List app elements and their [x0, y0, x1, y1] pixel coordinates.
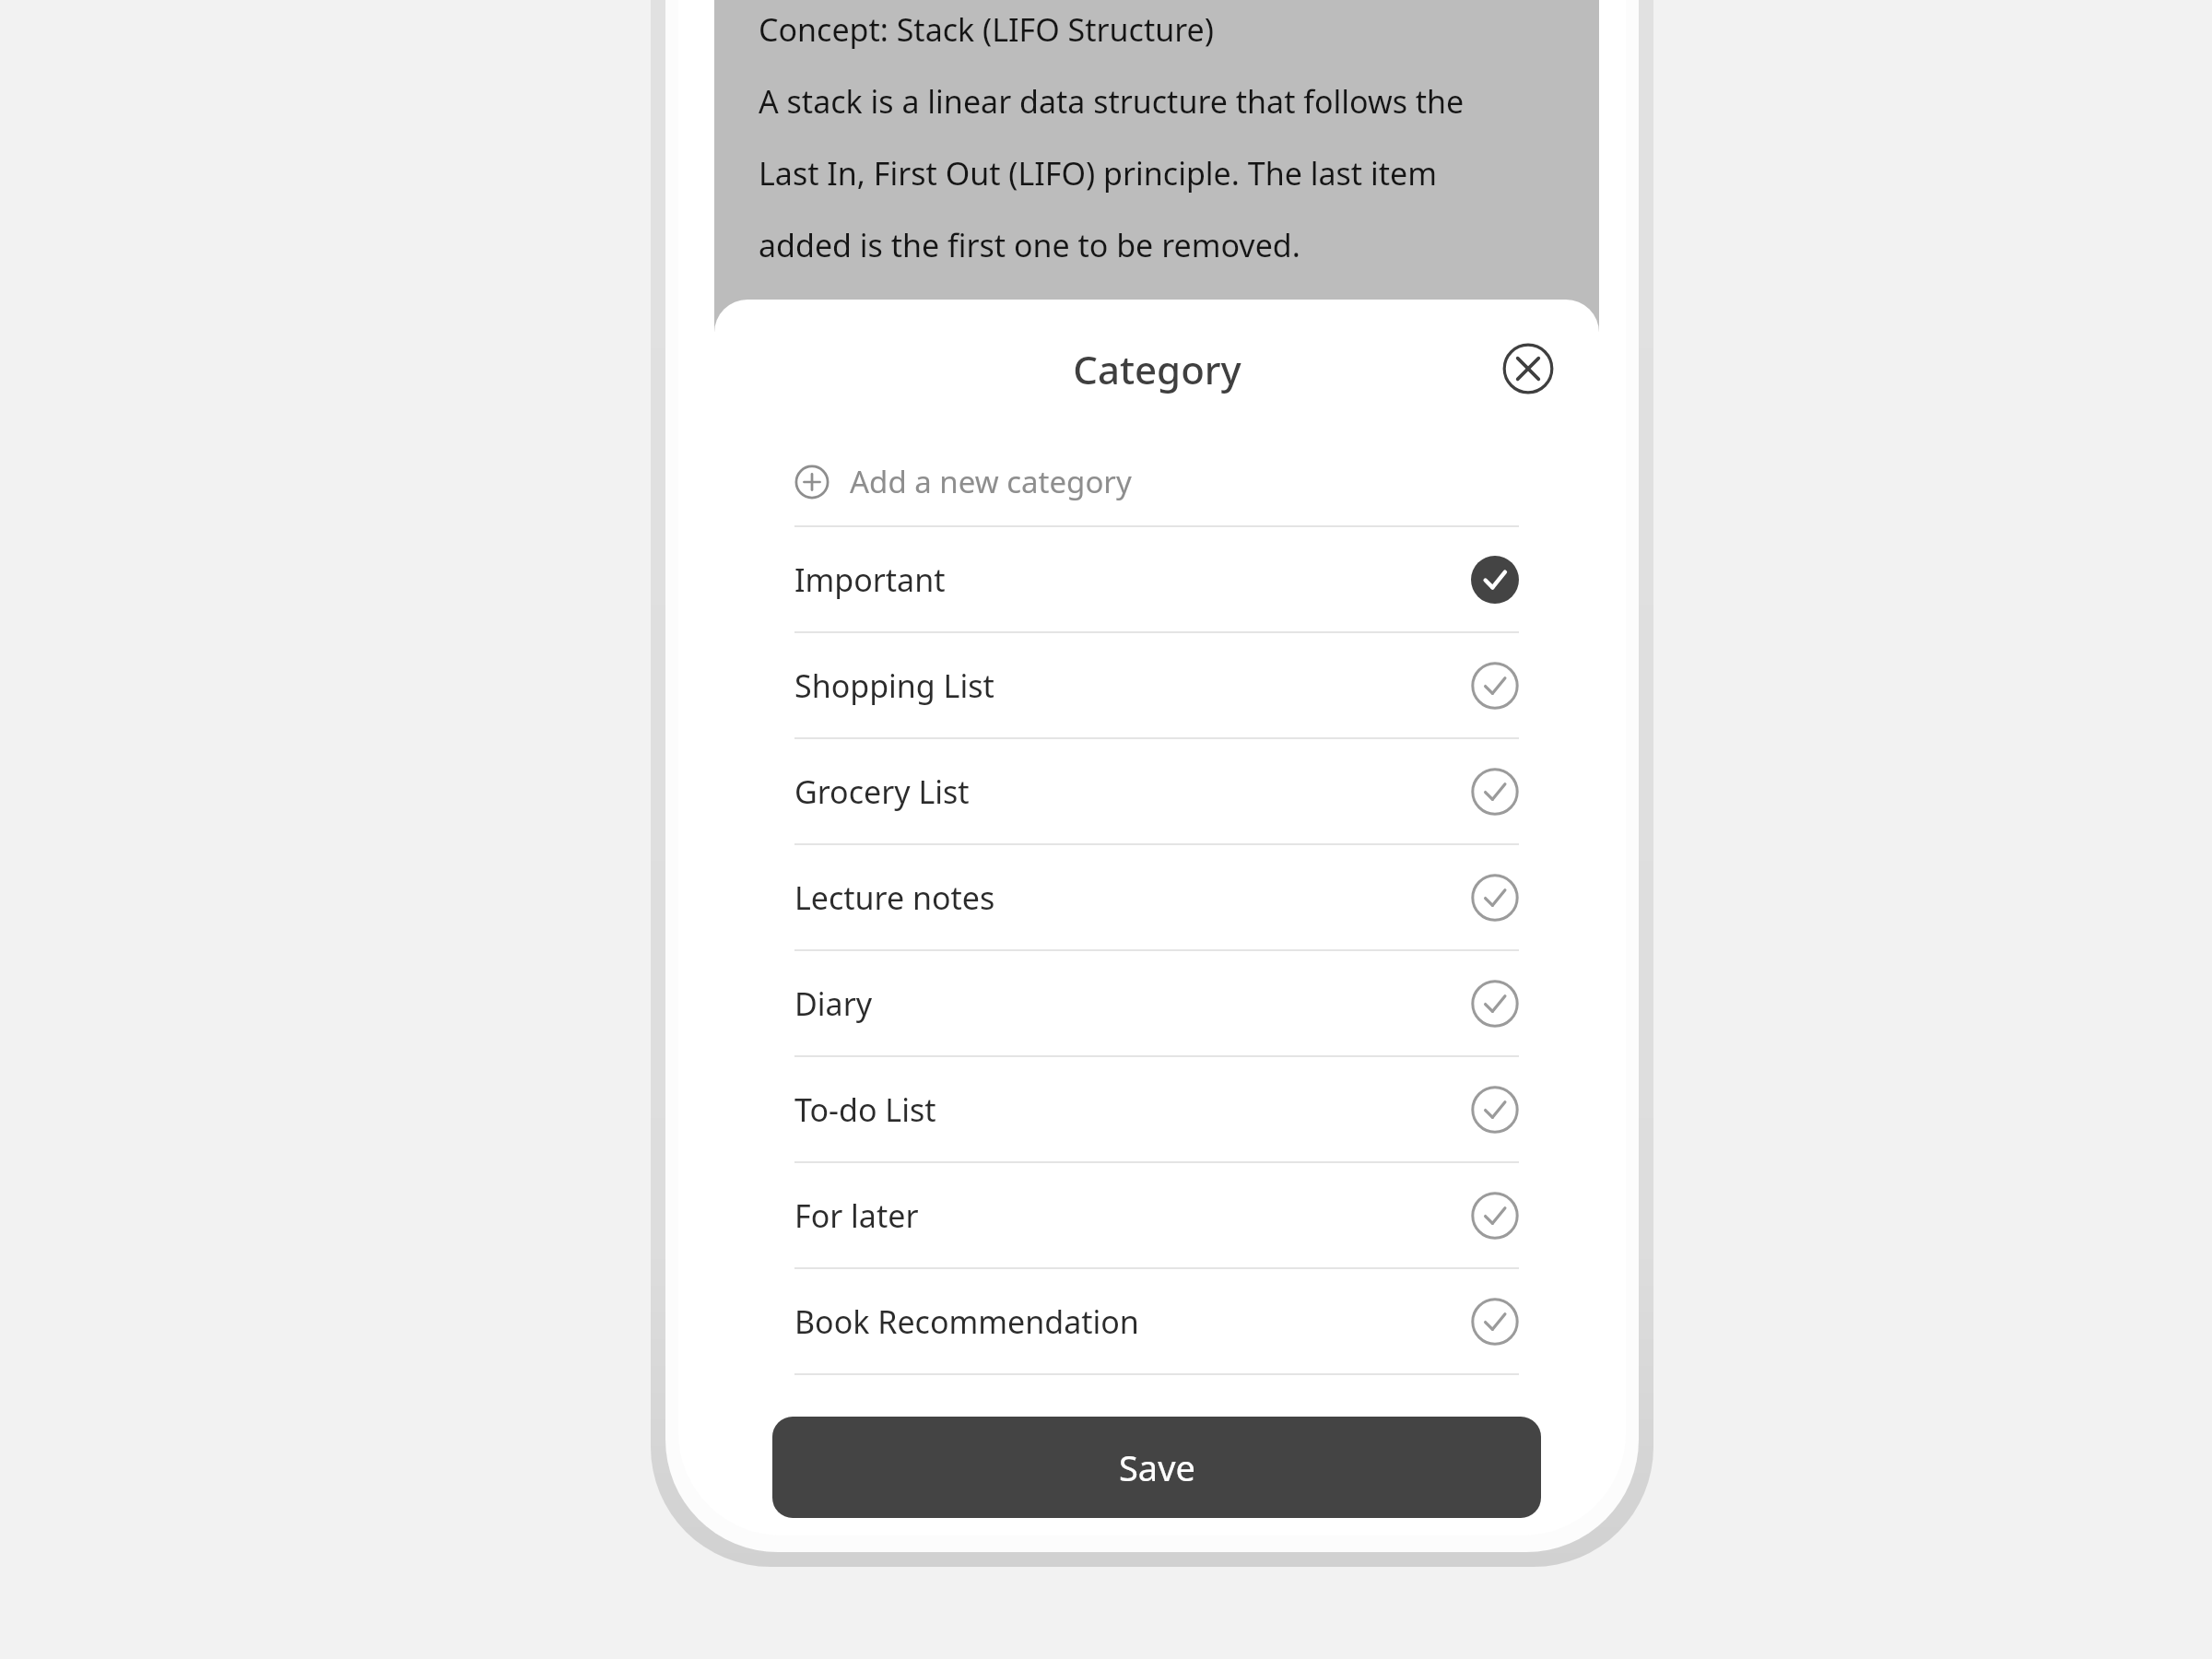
- button[interactable]: Important: [714, 527, 1599, 631]
- staticText: To-do List: [794, 1088, 1471, 1131]
- staticText: Add a new category: [850, 461, 1132, 502]
- staticText: Concept: Stack (LIFO Structure): [759, 8, 1214, 51]
- staticText: For later: [794, 1194, 1471, 1237]
- staticText: A stack is a linear data structure that …: [759, 80, 1465, 123]
- staticText: Grocery List: [794, 771, 1471, 813]
- staticText: Last In, First Out (LIFO) principle. The…: [759, 152, 1437, 194]
- button[interactable]: To-do List: [714, 1057, 1599, 1161]
- button[interactable]: Lecture notes: [714, 845, 1599, 949]
- button[interactable]: Shopping List: [714, 633, 1599, 737]
- staticText: Save: [1119, 1443, 1195, 1491]
- staticText: Diary: [794, 982, 1471, 1025]
- button[interactable]: Diary: [714, 951, 1599, 1055]
- button[interactable]: Save: [772, 1417, 1541, 1518]
- staticText: Important: [794, 559, 1471, 601]
- button[interactable]: Book Recommendation: [714, 1269, 1599, 1373]
- button[interactable]: Grocery List: [714, 739, 1599, 843]
- staticText: Category: [1073, 343, 1241, 395]
- button[interactable]: Close: [1501, 342, 1555, 395]
- button[interactable]: For later: [714, 1163, 1599, 1267]
- button[interactable]: Add a new category: [714, 438, 1599, 525]
- staticText: Lecture notes: [794, 877, 1471, 919]
- staticText: added is the first one to be removed.: [759, 224, 1300, 266]
- staticText: Shopping List: [794, 665, 1471, 707]
- staticText: Book Recommendation: [794, 1300, 1471, 1343]
